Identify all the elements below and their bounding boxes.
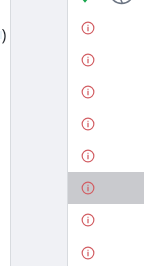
button[interactable]: Error marker [81, 85, 95, 99]
staticText: ) [0, 23, 10, 46]
other: Disable inspection [110, 0, 134, 5]
button[interactable] [11, 0, 68, 266]
button[interactable]: Error marker [81, 181, 95, 195]
button[interactable]: Error marker [81, 53, 95, 67]
button[interactable]: Error marker [81, 213, 95, 227]
button[interactable] [68, 172, 144, 204]
button[interactable]: Error marker [81, 149, 95, 163]
button[interactable]: Error marker [81, 246, 95, 260]
button[interactable]: Error marker [81, 117, 95, 131]
button[interactable]: Error marker [81, 21, 95, 35]
